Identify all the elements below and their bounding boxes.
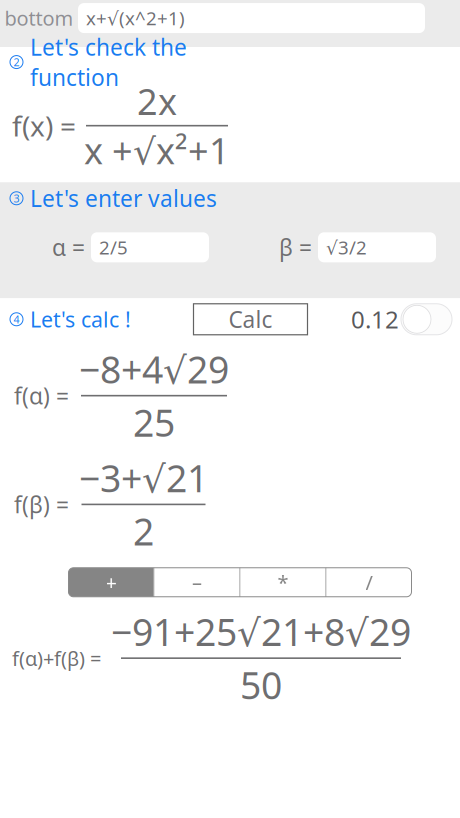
staticText: −91+25√21+8√29 bbox=[111, 607, 411, 656]
staticText: 2x bbox=[137, 77, 177, 125]
staticText: Let's check the function bbox=[30, 32, 187, 92]
button[interactable]: / bbox=[326, 568, 411, 597]
staticText: 2 bbox=[133, 506, 154, 556]
staticText: – bbox=[192, 569, 202, 596]
staticText: f(x) = bbox=[12, 107, 76, 144]
button[interactable]: x+√(x^2+1) bbox=[78, 3, 425, 33]
staticText: β = bbox=[279, 232, 312, 262]
staticText: 2/5 bbox=[99, 235, 128, 260]
staticText: 4 bbox=[13, 312, 19, 326]
button[interactable]: Calc bbox=[193, 304, 307, 335]
button[interactable]: * bbox=[240, 568, 325, 597]
staticText: 25 bbox=[133, 397, 175, 447]
staticText: / bbox=[365, 569, 372, 596]
staticText: 3 bbox=[13, 191, 19, 205]
staticText: bottom bbox=[4, 5, 73, 31]
button[interactable]: 2/5 bbox=[91, 232, 209, 262]
staticText: Calc bbox=[228, 304, 272, 334]
button[interactable]: Toggle exact value bbox=[401, 304, 452, 335]
staticText: −8+4√29 bbox=[79, 344, 229, 394]
staticText: f(α)+f(β) = bbox=[12, 645, 101, 671]
staticText: Let's enter values bbox=[30, 183, 217, 213]
staticText: * bbox=[277, 569, 288, 596]
staticText: x +√x²+1 bbox=[84, 126, 230, 174]
staticText: f(β) = bbox=[14, 489, 69, 519]
button[interactable]: + bbox=[68, 568, 153, 597]
staticText: −3+√21 bbox=[79, 453, 208, 503]
staticText: 50 bbox=[240, 660, 282, 710]
button[interactable]: – bbox=[154, 568, 239, 597]
staticText: Let's calc ! bbox=[30, 305, 131, 333]
staticText: 2 bbox=[13, 55, 19, 69]
staticText: f(α) = bbox=[14, 381, 69, 411]
staticText: α = bbox=[52, 232, 85, 262]
staticText: √3/2 bbox=[326, 235, 367, 260]
button[interactable]: √3/2 bbox=[318, 232, 436, 262]
staticText: 0.12 bbox=[351, 303, 399, 335]
staticText: x+√(x^2+1) bbox=[86, 6, 185, 30]
staticText: + bbox=[105, 569, 116, 596]
